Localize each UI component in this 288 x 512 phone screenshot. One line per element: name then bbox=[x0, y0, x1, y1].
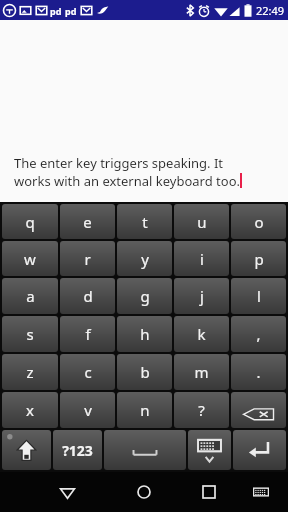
button[interactable]: Space bbox=[104, 430, 186, 470]
button[interactable]: d bbox=[60, 278, 115, 314]
staticText: r bbox=[84, 249, 91, 269]
button[interactable]: , bbox=[231, 316, 286, 352]
button[interactable]: x bbox=[2, 392, 58, 428]
button[interactable]: Switch keyboard bbox=[246, 477, 276, 507]
staticText: . bbox=[256, 362, 261, 382]
button[interactable]: e bbox=[60, 204, 115, 239]
button[interactable]: a bbox=[2, 278, 58, 314]
staticText: c bbox=[84, 362, 92, 382]
staticText: ?123 bbox=[62, 441, 93, 460]
button[interactable]: ? bbox=[174, 392, 229, 428]
staticText: s bbox=[26, 324, 34, 344]
button[interactable]: Back bbox=[50, 475, 84, 509]
staticText: z bbox=[26, 362, 34, 382]
button[interactable]: b bbox=[117, 354, 172, 390]
staticText: h bbox=[140, 324, 150, 344]
button[interactable]: Home bbox=[127, 475, 161, 509]
staticText: o bbox=[254, 212, 264, 232]
button[interactable]: q bbox=[2, 204, 58, 239]
button[interactable]: u bbox=[174, 204, 229, 239]
button[interactable]: w bbox=[2, 241, 58, 276]
staticText: t bbox=[142, 212, 148, 232]
button[interactable]: h bbox=[117, 316, 172, 352]
button[interactable]: t bbox=[117, 204, 172, 239]
staticText: a bbox=[26, 286, 35, 306]
staticText: The enter key triggers speaking. It work… bbox=[14, 154, 240, 190]
button[interactable]: l bbox=[231, 278, 286, 314]
staticText: j bbox=[200, 286, 204, 306]
staticText: x bbox=[26, 400, 34, 420]
button[interactable]: k bbox=[174, 316, 229, 352]
staticText: e bbox=[83, 212, 92, 232]
staticText: q bbox=[25, 212, 35, 232]
staticText: pd bbox=[65, 5, 77, 17]
button[interactable]: s bbox=[2, 316, 58, 352]
staticText: 22:49 bbox=[256, 3, 285, 18]
button[interactable]: c bbox=[60, 354, 115, 390]
staticText: l bbox=[257, 286, 261, 306]
button[interactable]: Recent apps bbox=[192, 475, 226, 509]
staticText: v bbox=[84, 400, 92, 420]
staticText: f bbox=[85, 324, 91, 344]
button[interactable]: g bbox=[117, 278, 172, 314]
button[interactable]: ?123 bbox=[53, 430, 102, 470]
button[interactable]: m bbox=[174, 354, 229, 390]
button[interactable]: Delete bbox=[231, 392, 286, 428]
button[interactable]: o bbox=[231, 204, 286, 239]
staticText: pd bbox=[50, 5, 62, 17]
staticText: n bbox=[140, 400, 150, 420]
button[interactable]: Shift bbox=[2, 430, 51, 470]
button[interactable]: y bbox=[117, 241, 172, 276]
staticText: k bbox=[197, 324, 206, 344]
button[interactable]: Hide keyboard bbox=[188, 430, 231, 470]
button[interactable]: j bbox=[174, 278, 229, 314]
staticText: ? bbox=[198, 400, 205, 420]
staticText: p bbox=[254, 249, 264, 269]
staticText: i bbox=[200, 249, 204, 269]
staticText: b bbox=[140, 362, 150, 382]
staticText: d bbox=[83, 286, 93, 306]
staticText: w bbox=[24, 249, 36, 269]
staticText: u bbox=[197, 212, 207, 232]
button[interactable]: r bbox=[60, 241, 115, 276]
button[interactable]: f bbox=[60, 316, 115, 352]
staticText: , bbox=[256, 324, 261, 344]
staticText: m bbox=[194, 362, 209, 382]
staticText: y bbox=[141, 249, 149, 269]
button[interactable]: Enter bbox=[233, 430, 286, 470]
button[interactable]: p bbox=[231, 241, 286, 276]
button[interactable]: z bbox=[2, 354, 58, 390]
button[interactable]: . bbox=[231, 354, 286, 390]
staticText: g bbox=[140, 286, 150, 306]
button[interactable]: i bbox=[174, 241, 229, 276]
button[interactable]: n bbox=[117, 392, 172, 428]
button[interactable]: v bbox=[60, 392, 115, 428]
